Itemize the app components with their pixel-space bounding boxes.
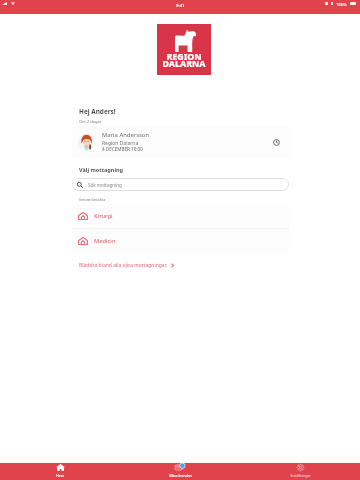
button[interactable]: Kirurgi (72, 204, 289, 228)
staticText: Hem (56, 473, 64, 478)
staticText: Senast besökta (79, 197, 106, 202)
staticText: Inställningar (290, 473, 311, 478)
button[interactable]: Hem (0, 463, 120, 480)
button[interactable]: Medicin (72, 229, 289, 253)
button[interactable]: Maria Andersson (72, 126, 289, 158)
button[interactable]: Sök mottagning (72, 178, 289, 191)
staticText: 9:41 (176, 2, 185, 8)
staticText: 4 DECEMBER 10:00 (102, 146, 143, 152)
staticText: Sök mottagning (88, 182, 122, 188)
button[interactable]: Tid (269, 135, 283, 149)
button[interactable]: Inställningar (240, 463, 360, 480)
staticText: Om 2 dagar (79, 119, 102, 124)
staticText: Mina ärenden (169, 473, 192, 478)
staticText: Maria Andersson (102, 131, 150, 139)
staticText: Välj mottagning (79, 166, 124, 173)
staticText: Kirurgi (94, 212, 113, 220)
staticText: Bläddra bland alla våra mottagningar (79, 262, 167, 269)
staticText: Medicin (94, 237, 116, 245)
button[interactable]: Mina ärenden (120, 463, 240, 480)
staticText: Region Dalarna (102, 140, 139, 147)
staticText: DALARNA (162, 58, 206, 70)
staticText: 100% (336, 1, 347, 7)
staticText: REGION (166, 51, 202, 63)
button[interactable]: Bläddra bland alla våra mottagningar (79, 262, 174, 269)
staticText: Hej Anders! (79, 107, 116, 116)
